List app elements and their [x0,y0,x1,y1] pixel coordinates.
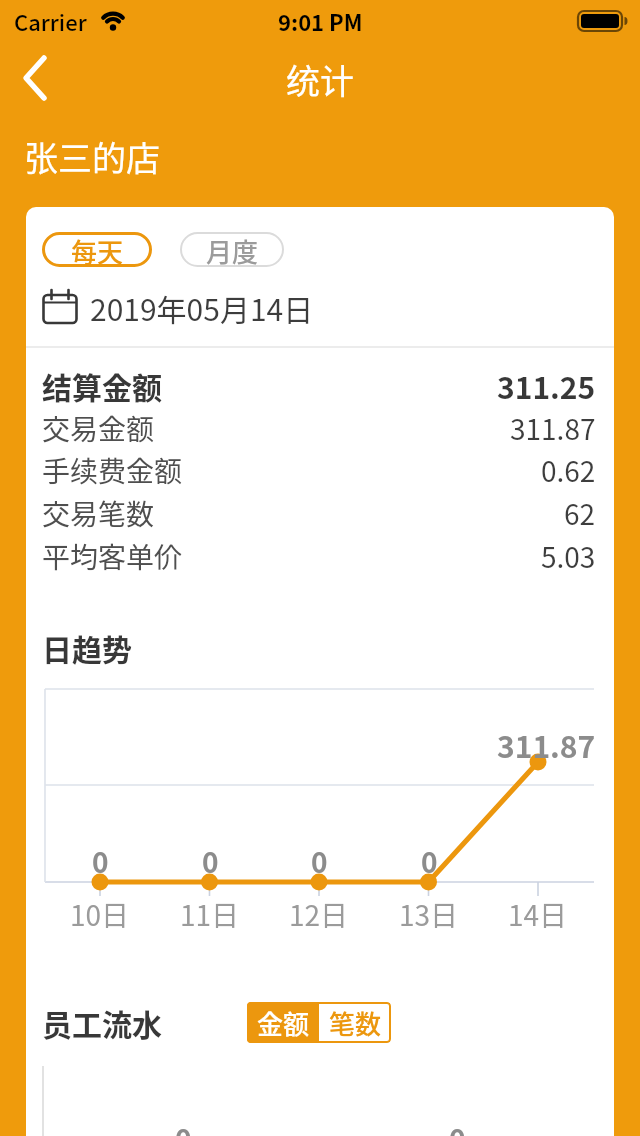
staticText: 每天 [71,232,124,267]
staticText: 统计 [286,55,354,104]
staticText: Carrier [14,5,87,37]
staticText: 0 [421,841,438,882]
staticText: 0 [175,1118,192,1136]
staticText: 5.03 [541,536,596,577]
button[interactable]: 每天 [42,232,152,267]
staticText: 手续费金额 [42,450,183,491]
staticText: 9:01 PM [278,5,363,37]
staticText: 0 [92,841,109,882]
staticText: 2019年05月14日 [90,286,314,329]
staticText: 金额 [257,1004,310,1042]
button[interactable]: 月度 [180,232,284,267]
staticText: 311.87 [497,723,596,766]
staticText: 12日 [289,894,349,935]
staticText: 月度 [206,232,259,267]
staticText: 311.25 [497,364,596,406]
staticText: 平均客单价 [42,536,183,577]
staticText: 13日 [399,894,459,935]
button[interactable] [10,50,66,106]
staticText: 0 [311,841,328,882]
staticText: 11日 [180,894,240,935]
staticText: 员工流水 [42,1001,162,1044]
staticText: 0 [449,1118,466,1136]
staticText: 笔数 [329,1004,382,1042]
staticText: 0.62 [541,450,596,491]
staticText: 10日 [70,894,130,935]
button[interactable]: 2019年05月14日 [90,286,314,329]
staticText: 交易笔数 [42,493,155,534]
staticText: 结算金额 [42,364,162,406]
staticText: 0 [202,841,219,882]
staticText: 311.87 [510,408,596,449]
staticText: 日趋势 [42,626,132,669]
staticText: 张三的店 [24,132,160,181]
button[interactable]: 金额 [247,1002,319,1043]
staticText: 62 [564,493,596,534]
button[interactable]: 笔数 [319,1002,391,1043]
staticText: 14日 [508,894,568,935]
staticText: 交易金额 [42,408,155,449]
